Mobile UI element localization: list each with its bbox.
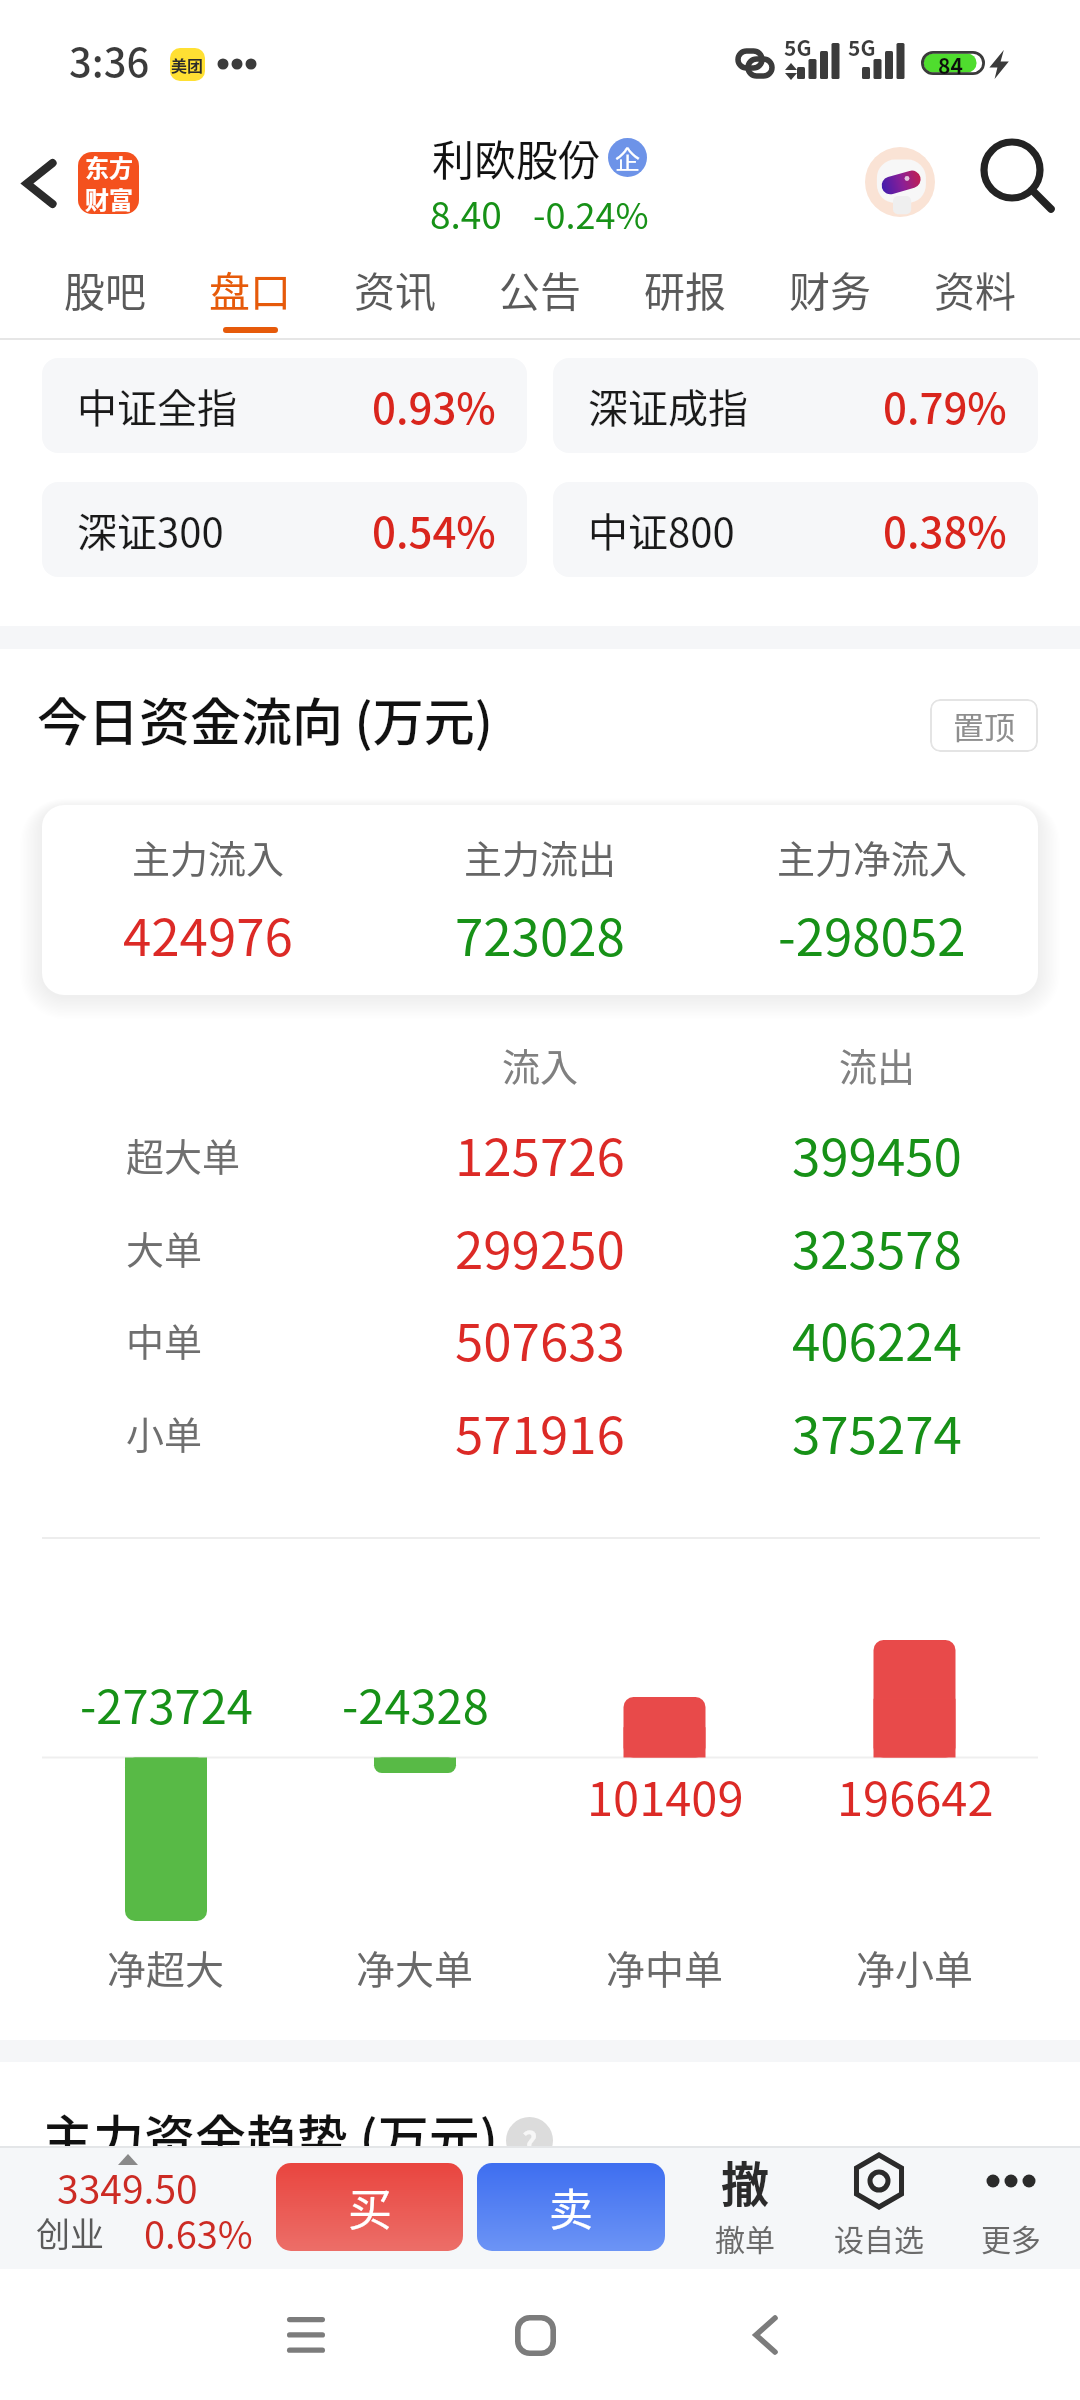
staticText: 323578: [792, 1210, 962, 1284]
staticText: 84: [938, 50, 963, 74]
staticText: -0.24%: [533, 187, 649, 239]
staticText: 净中单: [606, 1939, 724, 1995]
staticText: 196642: [837, 1761, 994, 1829]
staticText: 424976: [123, 897, 293, 971]
staticText: -298052: [778, 897, 966, 971]
button[interactable]: 中证全指: [42, 358, 527, 453]
staticText: 中证800: [588, 501, 735, 559]
staticText: 财富: [85, 181, 133, 214]
staticText: 深证300: [77, 501, 224, 559]
button[interactable]: 公告: [499, 240, 581, 340]
button[interactable]: 股吧: [64, 240, 146, 340]
button[interactable]: 主力流入: [42, 805, 1038, 995]
staticText: 0.79%: [883, 375, 1007, 436]
button[interactable]: Back: [705, 2275, 825, 2395]
staticText: 撤单: [715, 2216, 775, 2259]
staticText: 0.63%: [144, 2205, 253, 2260]
staticText: 5G: [784, 32, 812, 62]
staticText: 5G: [848, 32, 876, 62]
staticText: 研报: [644, 259, 726, 318]
staticText: 3:36: [69, 31, 150, 89]
button[interactable]: Help: [506, 2117, 553, 2164]
button[interactable]: 更多: [931, 2146, 1080, 2266]
button[interactable]: 置顶: [930, 699, 1038, 752]
button[interactable]: 盘口: [209, 240, 291, 340]
staticText: 更多: [981, 2216, 1041, 2259]
staticText: 流入: [502, 1037, 579, 1092]
button[interactable]: 买: [276, 2163, 463, 2251]
staticText: 571916: [455, 1395, 625, 1469]
staticText: 净大单: [356, 1939, 474, 1995]
staticText: 公告: [499, 259, 581, 318]
button[interactable]: East Money home: [78, 152, 139, 214]
staticText: 净超大: [107, 1939, 225, 1995]
button[interactable]: 资料: [934, 240, 1016, 340]
button[interactable]: 财务: [789, 240, 871, 340]
staticText: 125726: [455, 1117, 625, 1191]
staticText: 创业: [36, 2208, 104, 2257]
staticText: 净小单: [856, 1939, 974, 1995]
staticText: -273724: [80, 1669, 253, 1737]
staticText: 375274: [792, 1395, 962, 1469]
staticText: 买: [348, 2175, 392, 2239]
button[interactable]: Home: [475, 2275, 595, 2395]
staticText: 设自选: [834, 2216, 924, 2259]
staticText: 置顶: [953, 703, 1015, 748]
staticText: 深证成指: [588, 377, 748, 435]
staticText: 资料: [934, 259, 1016, 318]
staticText: 超大单: [126, 1127, 241, 1182]
staticText: 主力净流入: [777, 829, 968, 884]
staticText: 3349.50: [57, 2159, 198, 2215]
staticText: 主力资金趋势 (万元): [42, 2099, 498, 2173]
staticText: 小单: [126, 1405, 203, 1460]
button[interactable]: 深证成指: [553, 358, 1038, 453]
staticText: 0.54%: [372, 499, 496, 560]
staticText: 资讯: [354, 259, 436, 318]
button[interactable]: 撤: [665, 2146, 825, 2266]
staticText: -24328: [342, 1669, 489, 1737]
staticText: 8.40: [430, 186, 502, 240]
staticText: 0.38%: [883, 499, 1007, 560]
button[interactable]: AI assistant: [865, 147, 935, 217]
staticText: 主力流入: [132, 829, 285, 884]
staticText: 723028: [455, 897, 625, 971]
staticText: 今日资金流向 (万元): [37, 682, 493, 756]
staticText: 406224: [792, 1302, 962, 1376]
staticText: 利欧股份: [432, 127, 601, 188]
button[interactable]: Search: [960, 120, 1080, 240]
staticText: 299250: [455, 1210, 625, 1284]
button[interactable]: Back: [0, 120, 80, 240]
staticText: 财务: [789, 259, 871, 318]
staticText: 卖: [549, 2175, 593, 2239]
button[interactable]: 中证800: [553, 482, 1038, 577]
staticText: ?: [522, 2119, 538, 2162]
button[interactable]: 3349.50: [20, 2160, 260, 2260]
button[interactable]: 卖: [477, 2163, 665, 2251]
staticText: 0.93%: [372, 375, 496, 436]
staticText: 撤: [721, 2146, 770, 2216]
staticText: 399450: [792, 1117, 962, 1191]
staticText: 股吧: [64, 259, 146, 318]
button[interactable]: Recent apps: [246, 2275, 366, 2395]
staticText: 主力流出: [464, 829, 617, 884]
button[interactable]: 研报: [644, 240, 726, 340]
staticText: 东方: [85, 152, 133, 184]
staticText: 流出: [839, 1037, 916, 1092]
button[interactable]: 设自选: [799, 2146, 959, 2266]
button[interactable]: 深证300: [42, 482, 527, 577]
staticText: 507633: [455, 1302, 625, 1376]
staticText: 美团: [171, 53, 204, 76]
staticText: 盘口: [209, 259, 291, 318]
button[interactable]: 资讯: [354, 240, 436, 340]
staticText: 中单: [126, 1312, 203, 1367]
staticText: 企: [615, 140, 641, 176]
staticText: 101409: [587, 1761, 744, 1829]
staticText: 大单: [126, 1220, 203, 1275]
staticText: 中证全指: [77, 377, 237, 435]
